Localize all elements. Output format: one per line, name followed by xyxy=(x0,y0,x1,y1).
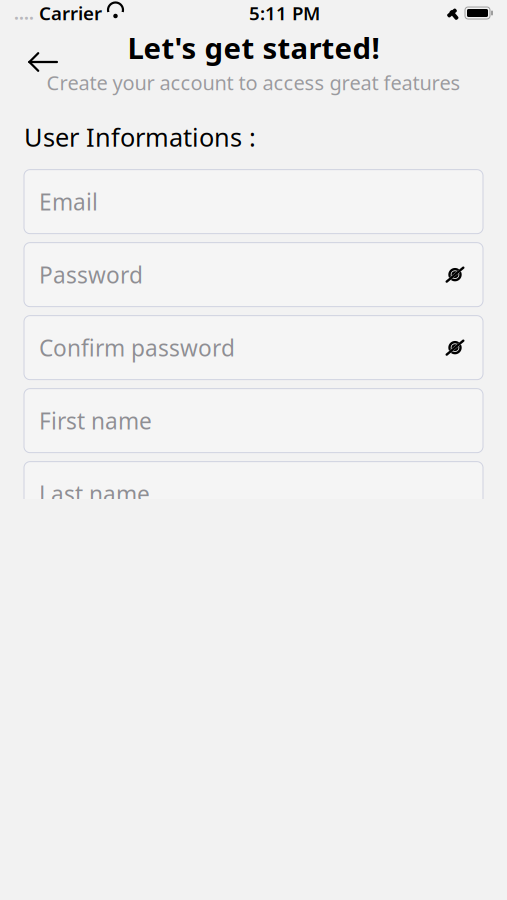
staticText: First name xyxy=(39,406,152,436)
staticText: Create your account to access great feat… xyxy=(46,69,460,96)
button[interactable]: Back xyxy=(14,39,72,85)
staticText: .... xyxy=(14,1,34,24)
button[interactable]: Show Password xyxy=(432,265,468,285)
staticText: 5:11 PM xyxy=(249,1,320,25)
staticText: Password xyxy=(39,260,143,290)
staticText: Last name xyxy=(39,479,150,509)
button[interactable]: Show Confirm password xyxy=(432,338,468,358)
staticText: Email xyxy=(39,187,98,217)
staticText: Confirm password xyxy=(39,333,235,363)
staticText: Carrier xyxy=(39,1,102,25)
staticText: Let's get started! xyxy=(127,28,379,67)
staticText: User Informations : xyxy=(24,120,256,154)
